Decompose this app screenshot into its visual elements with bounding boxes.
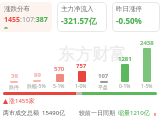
staticText: 主力净流入 <box>61 5 94 13</box>
button[interactable] <box>3 92 157 95</box>
staticText: 39 <box>11 72 18 80</box>
staticText: 1455:107:3878 <box>4 15 48 29</box>
staticText: ! <box>154 111 156 116</box>
staticText: 1-5% <box>141 83 153 90</box>
staticText: 涨跌分布 <box>4 5 30 13</box>
staticText: 1281 <box>118 55 132 63</box>
staticText: 570 <box>54 65 65 73</box>
staticText: -321.57亿 <box>61 15 97 26</box>
button[interactable]: 2438 <box>136 38 158 90</box>
staticText: 跌停 <box>9 84 19 90</box>
button[interactable]: 两市成交总额 <box>3 109 157 117</box>
staticText: 2438 <box>140 39 154 47</box>
staticText: 15490亿 <box>42 109 66 117</box>
staticText: 5-1% <box>53 83 65 90</box>
button[interactable]: 1281 <box>114 38 136 90</box>
staticText: 缩量1210亿 <box>118 109 150 117</box>
staticText: 昨日涨停 <box>116 5 142 13</box>
staticText: 89 <box>34 71 41 79</box>
staticText: 涨1455家 <box>9 97 35 105</box>
staticText: 0-1% <box>119 83 131 90</box>
staticText: 较前一日同期 <box>79 109 115 117</box>
staticText: 1-0% <box>75 83 87 90</box>
button[interactable]: 89 <box>25 38 48 90</box>
button[interactable]: 757 <box>70 38 92 90</box>
staticText: 东方财富 <box>58 44 126 65</box>
staticText: -0.50% <box>116 15 142 26</box>
staticText: 平盘 <box>98 84 108 90</box>
button[interactable]: 昨日涨停 <box>112 2 160 32</box>
staticText: 跌幅-5% <box>27 83 46 90</box>
staticText: 107 <box>98 72 109 80</box>
button[interactable]: 主力净流入 <box>57 2 107 32</box>
button[interactable]: 39 <box>2 38 25 90</box>
staticText: 两市成交总额 <box>3 109 39 117</box>
button[interactable]: 570 <box>48 38 70 90</box>
button[interactable]: Alert <box>152 111 157 116</box>
staticText: 757 <box>76 62 87 70</box>
button[interactable]: 107 <box>92 38 114 90</box>
button[interactable]: 涨跌分布 <box>0 2 52 32</box>
